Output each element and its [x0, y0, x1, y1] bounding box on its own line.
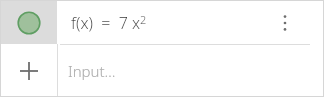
staticText: Input…	[68, 61, 116, 81]
button[interactable]: f(x) = 7 x2	[58, 1, 273, 44]
button[interactable]: Function colour	[1, 1, 57, 44]
staticText: f(x) = 7 x2	[71, 12, 147, 34]
button[interactable]: More options	[273, 1, 297, 44]
button[interactable]: Input…	[58, 45, 322, 96]
button[interactable]: Add	[1, 45, 57, 96]
